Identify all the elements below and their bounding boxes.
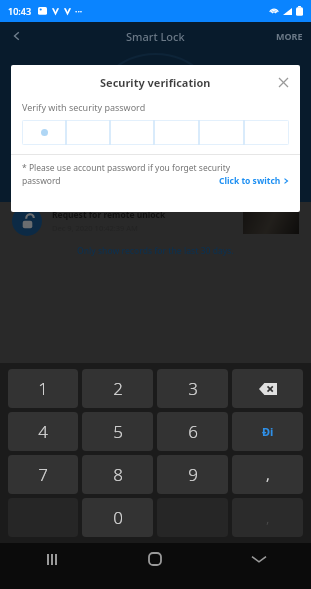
staticText: * Please use account password if you for… (22, 162, 231, 174)
staticText: 3 (188, 377, 198, 400)
button[interactable]: 7 (8, 455, 78, 494)
button[interactable]: Click to switch (219, 175, 289, 187)
staticText: 8 (113, 463, 123, 486)
button[interactable]: 3 (157, 369, 228, 408)
staticText: Request for remote unlock (52, 209, 166, 221)
staticText: Smart Lock (126, 29, 185, 44)
button[interactable]: , (232, 455, 303, 494)
button[interactable]: 6 (157, 412, 228, 451)
staticText: 6 (188, 420, 198, 443)
button[interactable]: Go (232, 412, 303, 451)
staticText: 5 (113, 420, 123, 443)
staticText: 9 (188, 463, 198, 486)
staticText: Đi (262, 424, 274, 439)
staticText: password (22, 175, 61, 187)
button[interactable]: Delete (232, 369, 303, 408)
staticText: , (266, 509, 270, 527)
staticText: 10:43 (8, 5, 32, 17)
button[interactable]: 1 (8, 369, 78, 408)
button[interactable]: Back (0, 22, 34, 50)
button[interactable]: 0 (82, 498, 153, 537)
staticText: 0 (113, 506, 123, 529)
button[interactable]: Close (274, 73, 292, 91)
button[interactable]: Back (207, 543, 311, 575)
staticText: ··· (75, 5, 83, 17)
button[interactable]: 4 (8, 412, 78, 451)
button[interactable]: MORE (276, 30, 303, 42)
button[interactable]: Request for remote unlock (0, 200, 311, 242)
button[interactable]: Recents (0, 543, 103, 575)
staticText: 1 (38, 377, 48, 400)
staticText: Click to switch (219, 175, 281, 187)
staticText: 2 (113, 377, 123, 400)
staticText: Security verification (100, 75, 211, 90)
staticText: , (266, 465, 270, 484)
staticText: Only show records for the last 30 days. (77, 245, 234, 257)
button[interactable]: 9 (157, 455, 228, 494)
staticText: 4 (38, 420, 48, 443)
button[interactable] (22, 120, 289, 145)
staticText: 7 (38, 463, 48, 486)
button[interactable]: Home (103, 543, 207, 575)
button[interactable]: 2 (82, 369, 153, 408)
button[interactable]: 5 (82, 412, 153, 451)
staticText: Verify with security password (22, 101, 146, 113)
button[interactable]: 8 (82, 455, 153, 494)
staticText: MORE (276, 30, 303, 42)
